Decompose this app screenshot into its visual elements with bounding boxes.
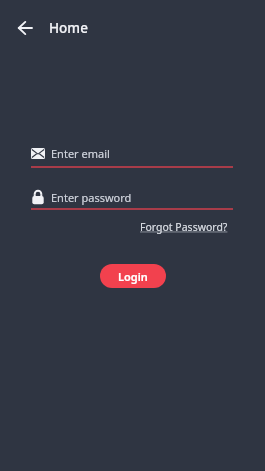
button[interactable]: Login: [100, 264, 166, 288]
button[interactable]: Forgot Password?: [140, 220, 228, 234]
staticText: Home: [49, 19, 88, 37]
button[interactable]: Enter email: [31, 145, 233, 161]
staticText: Login: [118, 269, 148, 284]
staticText: Enter password: [51, 190, 132, 205]
staticText: Enter email: [51, 146, 110, 161]
button[interactable]: [17, 12, 49, 44]
button[interactable]: Enter password: [31, 189, 233, 205]
